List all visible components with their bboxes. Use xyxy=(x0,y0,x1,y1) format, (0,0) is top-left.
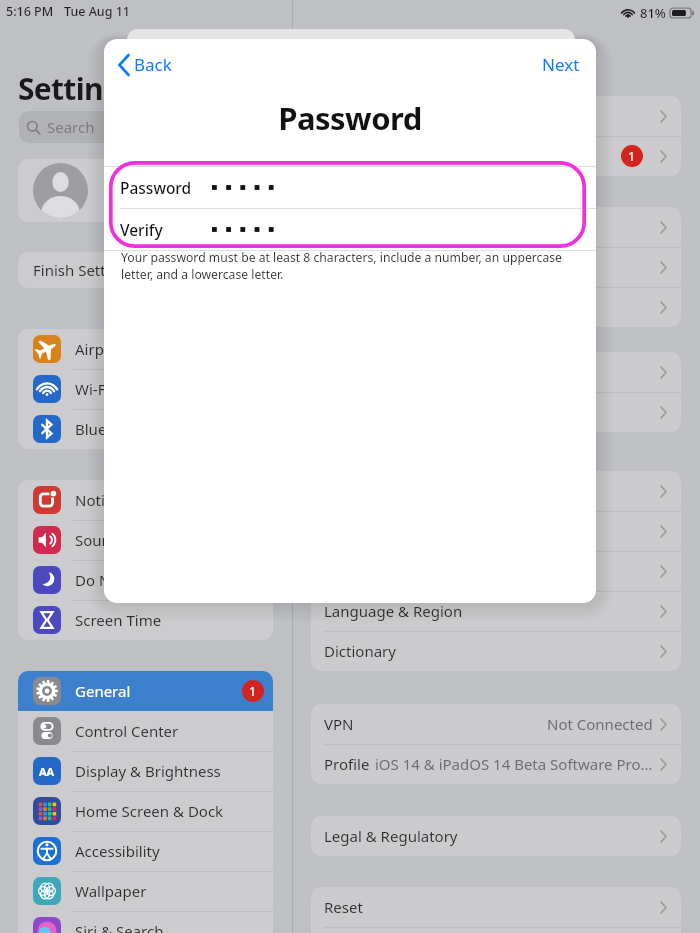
button[interactable]: Home Screen & Dock xyxy=(18,791,273,831)
button[interactable]: Next xyxy=(528,45,596,84)
staticText: Legal & Regulatory xyxy=(324,826,458,846)
button[interactable]: VPN xyxy=(311,704,681,744)
button[interactable]: Dictionary xyxy=(311,631,681,671)
staticText: Settings xyxy=(18,68,136,109)
staticText: AA xyxy=(39,764,55,779)
button[interactable]: Keyboard xyxy=(311,511,681,551)
staticText: Tue Aug 11 xyxy=(64,3,130,20)
button[interactable]: About xyxy=(311,96,681,136)
staticText: Search xyxy=(47,117,95,137)
button[interactable]: Siri & Search xyxy=(18,911,273,933)
button[interactable]: General xyxy=(18,671,273,711)
staticText: Sounds xyxy=(75,530,264,550)
button[interactable]: Legal & Regulatory xyxy=(311,816,681,856)
button[interactable]: Reset xyxy=(311,887,681,927)
staticText: Screen Time xyxy=(75,610,264,630)
staticText: iOS 14 & iPadOS 14 Beta Software Pro… xyxy=(375,754,653,774)
button[interactable]: Language & Region xyxy=(311,591,681,631)
staticText: Home Screen & Dock xyxy=(75,801,264,821)
staticText: Finish Setting Up Your iPad xyxy=(33,260,223,280)
button[interactable]: Shut Down xyxy=(311,927,681,933)
staticText: Siri & Search xyxy=(75,921,264,933)
staticText: 1 xyxy=(249,683,257,700)
button[interactable]: Search xyxy=(19,111,273,143)
staticText: Back xyxy=(134,53,172,76)
button[interactable]: Picture in Picture xyxy=(311,287,681,327)
button[interactable]: AirDrop xyxy=(311,207,681,247)
button[interactable]: Verify xyxy=(104,209,596,250)
button[interactable]: Background App Refresh xyxy=(311,392,681,432)
button[interactable]: Password xyxy=(104,167,596,208)
button[interactable]: Bluetooth xyxy=(18,409,273,449)
staticText: Bluetooth xyxy=(75,419,264,439)
staticText: Password xyxy=(278,97,422,137)
staticText: Your password must be at least 8 charact… xyxy=(121,249,573,283)
staticText: 81% xyxy=(640,4,666,22)
staticText: Wi-Fi xyxy=(75,379,264,399)
staticText: Notifications xyxy=(75,490,264,510)
staticText: Not Connected xyxy=(547,714,653,734)
button[interactable]: Fonts xyxy=(311,551,681,591)
button[interactable]: Airplane Mode xyxy=(18,329,273,369)
button[interactable]: AirPlay & Handoff xyxy=(311,247,681,287)
staticText: Software Update xyxy=(324,146,443,166)
staticText: VPN xyxy=(324,714,354,734)
button[interactable]: Finish Setting Up Your iPad xyxy=(18,252,273,288)
staticText: Do Not Disturb xyxy=(75,570,264,590)
staticText: Wallpaper xyxy=(75,881,264,901)
button[interactable]: Notifications xyxy=(18,480,273,520)
staticText: 5:16 PM xyxy=(6,3,54,20)
staticText: AirPlay & Handoff xyxy=(324,257,449,277)
staticText: Profile xyxy=(324,754,370,774)
staticText: Accessibility xyxy=(75,841,264,861)
staticText: Dictionary xyxy=(324,641,396,661)
staticText: Airplane Mode xyxy=(75,339,264,359)
button[interactable]: Wi-Fi xyxy=(18,369,273,409)
staticText: Password xyxy=(120,177,192,198)
button[interactable]: Profile xyxy=(311,744,681,784)
staticText: Language & Region xyxy=(324,601,463,621)
button[interactable]: Do Not Disturb xyxy=(18,560,273,600)
staticText: Control Center xyxy=(75,721,264,741)
button[interactable]: Sounds xyxy=(18,520,273,560)
button[interactable]: Back xyxy=(104,45,184,84)
staticText: Next xyxy=(542,53,580,76)
button[interactable]: Software Update xyxy=(311,136,681,176)
button[interactable]: AA xyxy=(18,751,273,791)
button[interactable]: Wallpaper xyxy=(18,871,273,911)
button[interactable]: Date & Time xyxy=(311,471,681,511)
staticText: Reset xyxy=(324,897,363,917)
staticText: Verify xyxy=(120,219,163,240)
staticText: General xyxy=(75,681,242,701)
button[interactable]: Screen Time xyxy=(18,600,273,640)
button[interactable]: Accessibility xyxy=(18,831,273,871)
staticText: About xyxy=(324,106,367,126)
staticText: Display & Brightness xyxy=(75,761,264,781)
button[interactable]: Control Center xyxy=(18,711,273,751)
button[interactable]: Apple ID, iCloud, Media & Purchases xyxy=(18,159,273,222)
staticText: 1 xyxy=(628,148,636,165)
button[interactable]: iPad Storage xyxy=(311,352,681,392)
